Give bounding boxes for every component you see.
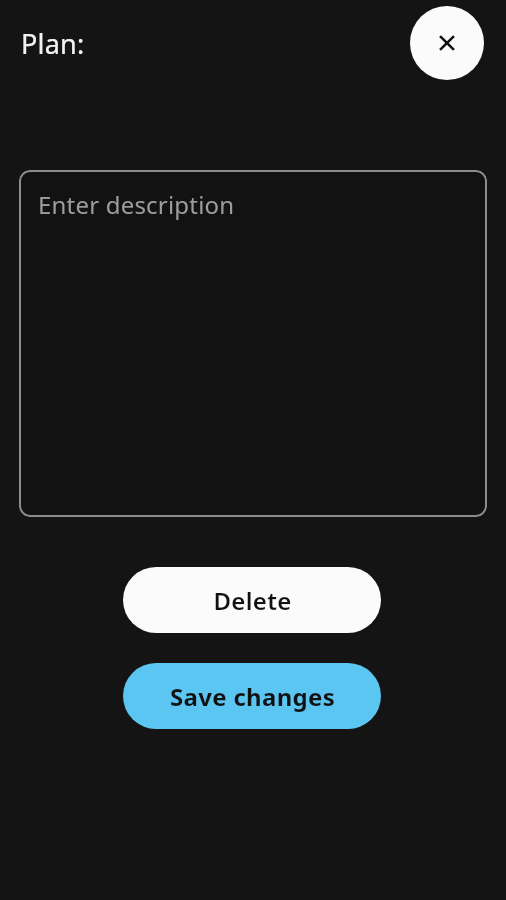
staticText: Plan: <box>21 25 85 62</box>
button[interactable]: Delete <box>123 567 381 633</box>
button[interactable]: Save changes <box>123 663 381 729</box>
button[interactable]: Close <box>410 6 484 80</box>
staticText: Save changes <box>170 680 335 713</box>
staticText: Delete <box>213 584 292 617</box>
staticText: Enter description <box>38 188 235 221</box>
button[interactable]: Enter description <box>19 170 487 517</box>
